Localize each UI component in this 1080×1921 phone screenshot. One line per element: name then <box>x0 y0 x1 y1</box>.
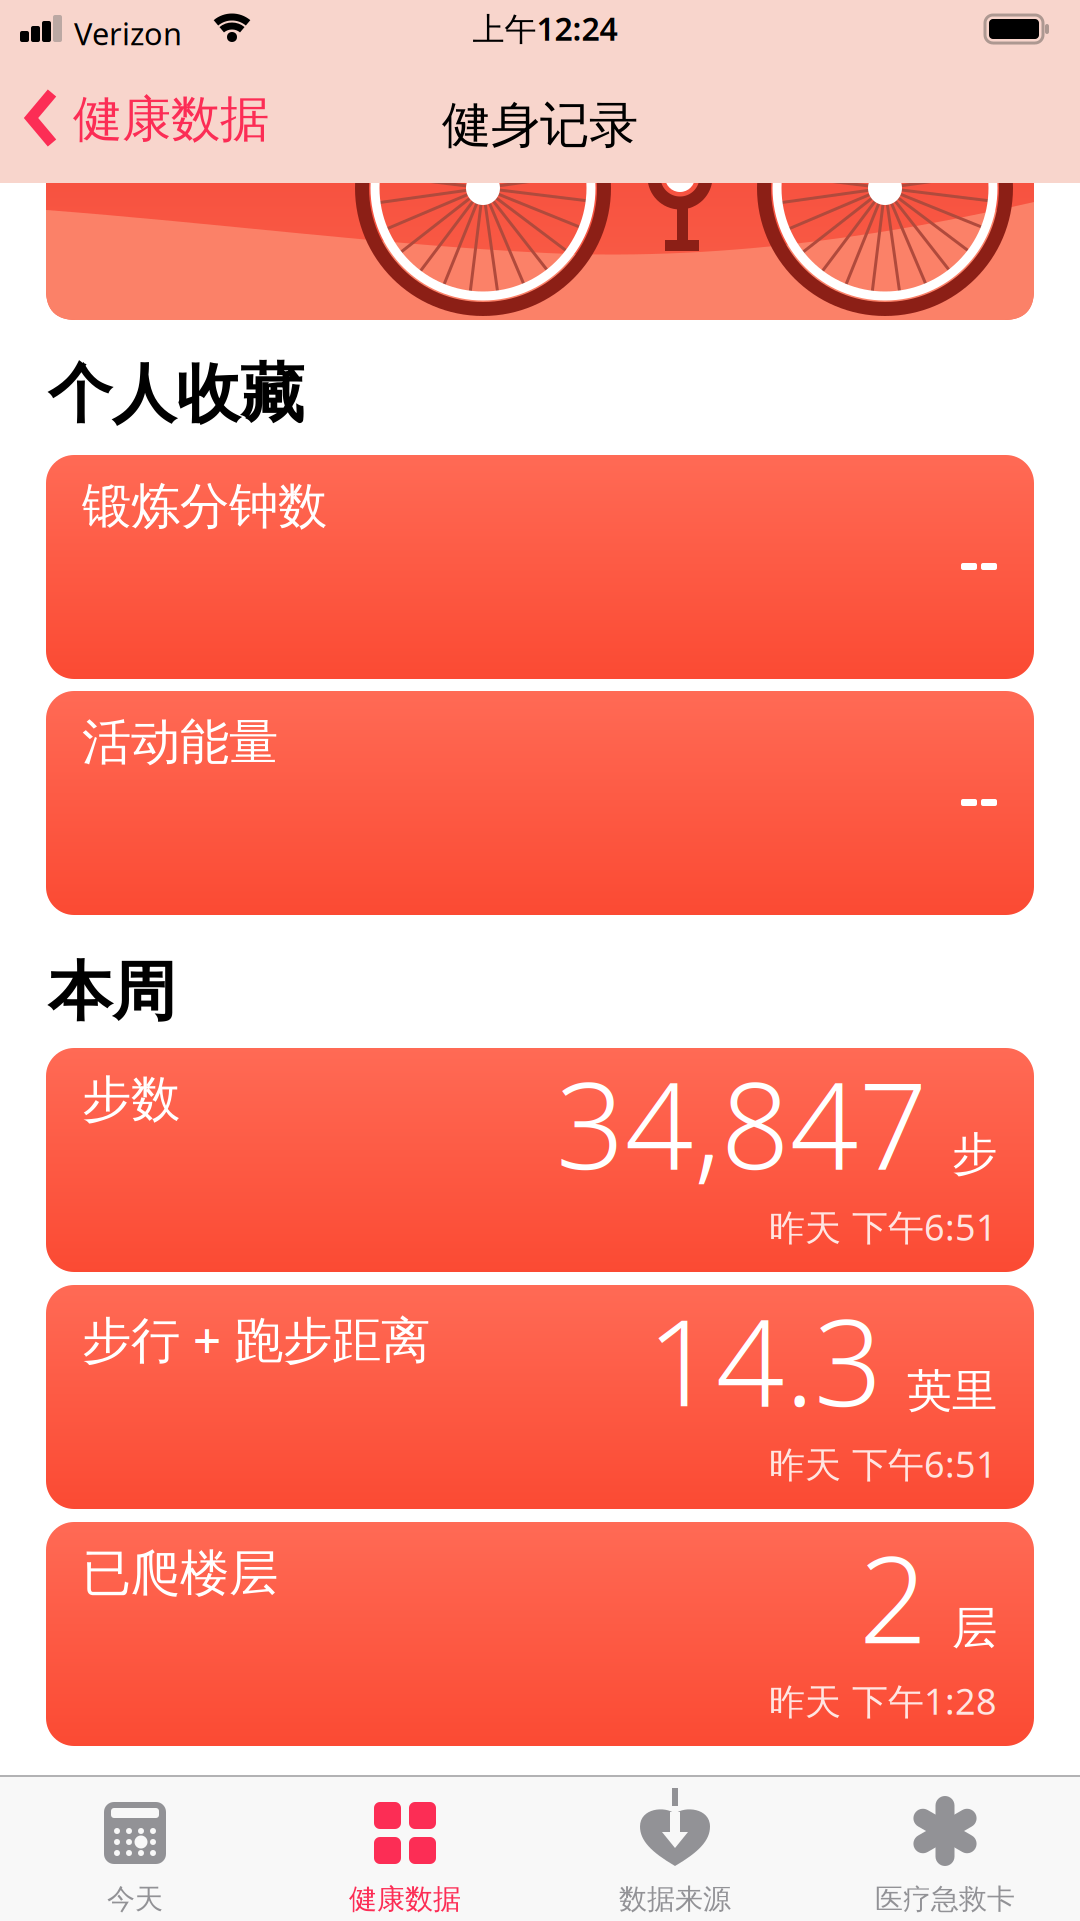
button[interactable]: 已爬楼层 <box>46 1522 1034 1746</box>
staticText: 活动能量 <box>82 712 278 773</box>
button[interactable]: 锻炼分钟数 <box>46 455 1034 679</box>
staticText: 步行 + 跑步距离 <box>82 1306 430 1371</box>
button[interactable]: 步行 + 跑步距离 <box>46 1285 1034 1509</box>
staticText: 2 <box>859 1517 928 1676</box>
staticText: 步 <box>952 1126 997 1182</box>
staticText: 14.3 <box>647 1280 883 1439</box>
staticText: 健身记录 <box>442 95 638 156</box>
staticText: 昨天 下午6:51 <box>769 1440 997 1488</box>
staticText: 上午12:24 <box>472 7 617 49</box>
button[interactable]: 步数 <box>46 1048 1034 1272</box>
staticText: 个人收藏 <box>48 355 304 434</box>
staticText: Verizon <box>74 13 182 54</box>
staticText: 已爬楼层 <box>82 1543 278 1604</box>
button[interactable]: 健康数据 <box>0 85 320 171</box>
button[interactable]: 活动能量 <box>46 691 1034 915</box>
button[interactable]: 健康数据 <box>270 1775 540 1921</box>
staticText: 医疗急救卡 <box>875 1882 1015 1916</box>
button[interactable]: 医疗急救卡 <box>810 1775 1080 1921</box>
staticText: 层 <box>952 1600 997 1656</box>
staticText: 本周 <box>48 953 176 1032</box>
staticText: 健康数据 <box>349 1882 461 1916</box>
staticText: 34,847 <box>556 1043 928 1202</box>
staticText: 数据来源 <box>619 1882 731 1916</box>
staticText: 步数 <box>82 1069 180 1130</box>
staticText: 英里 <box>907 1363 997 1419</box>
button[interactable]: 今天 <box>0 1775 270 1921</box>
staticText: 健康数据 <box>73 89 269 150</box>
staticText: 昨天 下午1:28 <box>769 1677 997 1725</box>
staticText: 今天 <box>107 1882 163 1916</box>
staticText: 锻炼分钟数 <box>82 476 327 537</box>
button[interactable]: 数据来源 <box>540 1775 810 1921</box>
staticText: 昨天 下午6:51 <box>769 1203 997 1251</box>
